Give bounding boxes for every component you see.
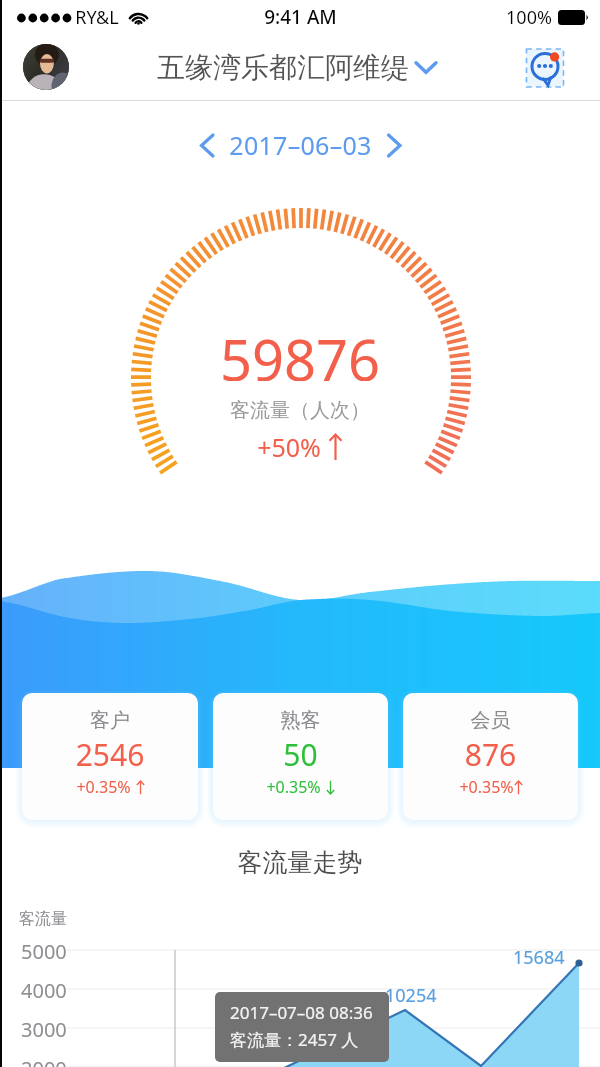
- staticText: 五缘湾乐都汇阿维缇: [157, 50, 409, 85]
- staticText: 59876: [0, 321, 600, 381]
- staticText: 9:41 AM: [264, 4, 337, 30]
- staticText: 客流量（人次）: [0, 398, 600, 423]
- staticText: 3000: [21, 1016, 67, 1043]
- button[interactable]: 会员: [403, 693, 578, 820]
- staticText: +50%: [257, 430, 321, 464]
- staticText: 2000: [21, 1055, 67, 1067]
- staticText: +0.35%: [459, 776, 514, 798]
- staticText: 客流量：2457 人: [230, 1028, 359, 1051]
- button[interactable]: Profile: [23, 44, 69, 90]
- staticText: 876: [403, 734, 578, 775]
- staticText: 客户: [22, 708, 198, 733]
- staticText: 2546: [22, 734, 198, 775]
- staticText: +0.35%: [76, 776, 131, 798]
- staticText: 会员: [403, 708, 578, 733]
- staticText: 客流量: [19, 909, 67, 929]
- staticText: 2017–06–03: [229, 128, 372, 162]
- button[interactable]: 五缘湾乐都汇阿维缇: [157, 50, 438, 85]
- button[interactable]: 2017–07–08 08:36: [215, 992, 389, 1062]
- button[interactable]: 熟客: [213, 693, 388, 820]
- button[interactable]: Messages: [524, 45, 566, 87]
- staticText: 客流量走势: [0, 847, 600, 878]
- staticText: 熟客: [213, 708, 388, 733]
- staticText: RY&L: [75, 5, 119, 30]
- button[interactable]: 2017–06–03: [0, 118, 600, 172]
- staticText: 5000: [21, 938, 67, 965]
- staticText: 10254: [385, 983, 437, 1008]
- staticText: 100%: [506, 5, 552, 30]
- staticText: 50: [213, 734, 388, 775]
- button[interactable]: 客户: [22, 693, 198, 820]
- staticText: +0.35%: [266, 776, 321, 798]
- staticText: 4000: [21, 977, 67, 1004]
- staticText: 2017–07–08 08:36: [230, 1001, 373, 1024]
- staticText: 15684: [513, 945, 565, 970]
